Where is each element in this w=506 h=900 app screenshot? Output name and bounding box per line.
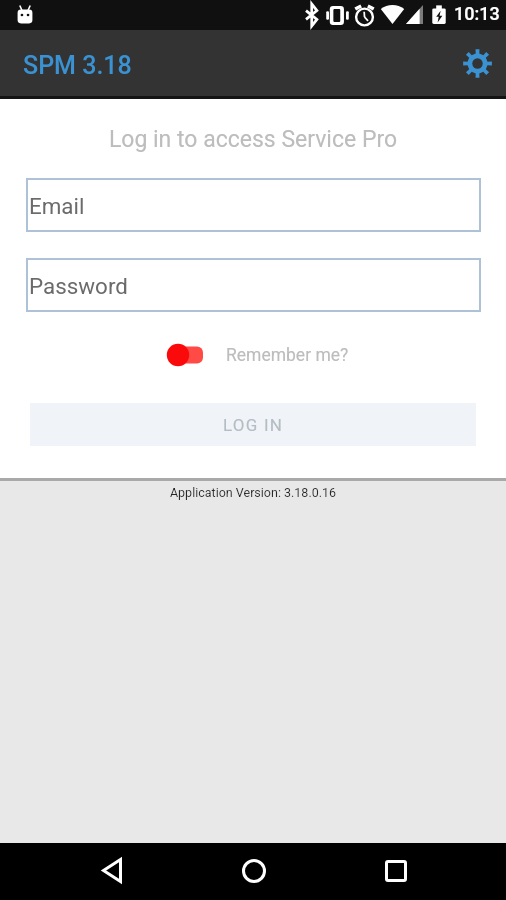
staticText: Log in to access Service Pro: [0, 126, 506, 153]
button[interactable]: Back: [84, 843, 139, 898]
button[interactable]: LOG IN: [30, 403, 476, 446]
button[interactable]: Settings: [455, 41, 500, 86]
button[interactable]: Email: [26, 178, 481, 232]
button[interactable]: Remember me?: [163, 339, 349, 371]
button[interactable]: Home: [226, 843, 281, 898]
staticText: Remember me?: [226, 345, 349, 366]
staticText: Application Version: 3.18.0.16: [0, 485, 506, 500]
button[interactable]: Password: [26, 258, 481, 312]
button[interactable]: Recents: [368, 843, 423, 898]
staticText: Email: [29, 193, 85, 219]
staticText: SPM 3.18: [23, 51, 132, 80]
staticText: Password: [29, 273, 128, 299]
staticText: LOG IN: [223, 415, 284, 435]
staticText: 10:13: [454, 3, 500, 24]
